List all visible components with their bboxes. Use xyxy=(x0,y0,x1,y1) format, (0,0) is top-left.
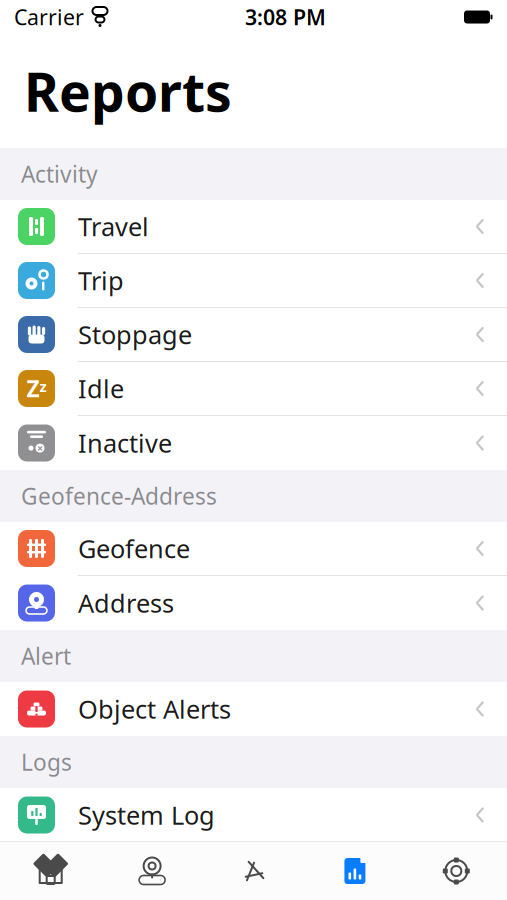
staticText: Geofence-Address xyxy=(21,481,217,511)
staticText: Activity xyxy=(21,159,98,189)
staticText: Reports xyxy=(24,56,232,126)
staticText: Logs xyxy=(21,747,72,777)
button[interactable]: Z xyxy=(0,362,507,416)
button[interactable]: Navigate xyxy=(203,857,304,885)
staticText: Trip xyxy=(78,264,124,297)
staticText: Z xyxy=(26,373,39,403)
button[interactable]: × xyxy=(0,416,507,470)
staticText: Inactive xyxy=(78,426,172,460)
button[interactable]: Address xyxy=(0,576,507,630)
button[interactable]: System Log xyxy=(0,788,507,842)
staticText: z xyxy=(39,376,46,396)
button[interactable]: Travel xyxy=(0,200,507,254)
button[interactable]: Home xyxy=(0,858,101,884)
button[interactable]: Places xyxy=(101,857,203,885)
button[interactable]: Trip xyxy=(0,254,507,308)
staticText: × xyxy=(37,441,43,455)
button[interactable]: Stoppage xyxy=(0,308,507,362)
staticText: Alert xyxy=(21,641,71,671)
staticText: Address xyxy=(78,586,174,620)
staticText: 3:08 PM xyxy=(245,3,326,31)
staticText: Stoppage xyxy=(78,318,192,351)
staticText: Geofence xyxy=(78,532,190,565)
staticText: Carrier xyxy=(14,3,84,31)
staticText: Travel xyxy=(78,210,149,243)
button[interactable]: Geofence xyxy=(0,522,507,576)
staticText: Idle xyxy=(78,372,124,405)
button[interactable]: Settings xyxy=(406,857,507,885)
staticText: Object Alerts xyxy=(78,692,231,726)
button[interactable]: Object Alerts xyxy=(0,682,507,736)
staticText: System Log xyxy=(78,798,215,832)
button[interactable]: Reports xyxy=(304,857,406,885)
